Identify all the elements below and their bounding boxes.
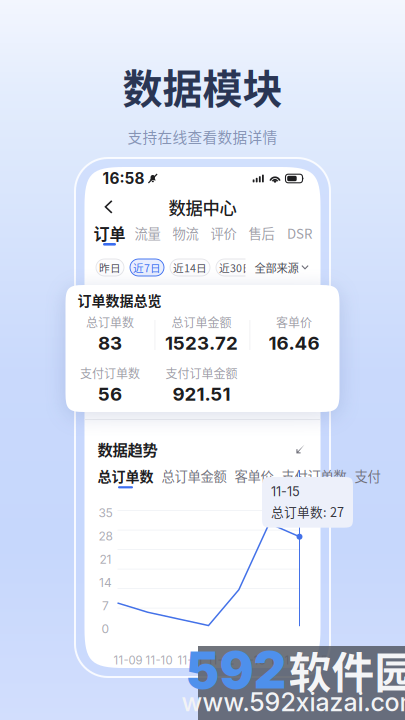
button[interactable]: 全屏 <box>292 441 308 457</box>
staticText: 数据趋势 <box>97 438 157 460</box>
staticText: 客单价 <box>276 313 312 331</box>
staticText: 总订单数 <box>97 466 153 486</box>
button[interactable]: 昨日 <box>96 259 124 276</box>
staticText: 支付 <box>354 466 380 485</box>
staticText: 软件园 <box>288 639 405 701</box>
staticText: 16:58 <box>102 169 144 188</box>
staticText: 11-11 <box>177 653 202 667</box>
button[interactable]: 物流 <box>166 225 204 246</box>
button[interactable]: 近30日 <box>216 259 256 276</box>
staticText: 支付订单数 <box>80 364 140 382</box>
button[interactable]: 近14日 <box>170 259 210 276</box>
button[interactable]: 评价 <box>204 225 242 246</box>
button[interactable]: 近7日 <box>130 259 164 276</box>
button[interactable]: 支付订单数 <box>281 468 346 490</box>
staticText: 数据模块 <box>122 57 282 115</box>
staticText: 0 <box>101 622 109 636</box>
staticText: 11-15 <box>300 653 327 667</box>
button[interactable]: 订单 <box>90 225 128 246</box>
staticText: 数据中心 <box>168 194 236 220</box>
staticText: 1523.72 <box>165 332 238 354</box>
staticText: 近7 <box>270 260 287 275</box>
staticText: 14 <box>99 575 112 590</box>
staticText: 物流 <box>172 223 198 243</box>
staticText: 流量 <box>134 223 160 243</box>
staticText: 总订单金额 <box>171 313 231 331</box>
staticText: 售后 <box>248 223 274 243</box>
button[interactable]: 流量 <box>128 225 166 246</box>
staticText: 客单价 <box>234 466 273 485</box>
staticText: DSR <box>287 223 312 243</box>
staticText: 16.46 <box>268 332 319 354</box>
button[interactable]: 返回 <box>96 195 120 219</box>
staticText: 支付订单金额 <box>165 364 237 382</box>
staticText: 订单 <box>93 221 125 245</box>
staticText: 昨日 <box>99 260 121 275</box>
staticText: 总订单数: 27 <box>271 502 344 521</box>
staticText: 11-13 <box>238 653 265 667</box>
staticText: 11-12 <box>207 653 234 667</box>
staticText: 支持在线查看数据详情 <box>127 126 277 147</box>
button[interactable]: 支付 <box>354 468 380 490</box>
staticText: 21 <box>99 552 111 567</box>
staticText: 近7日 <box>133 260 161 275</box>
staticText: 11-09 <box>113 653 142 667</box>
button[interactable]: 近7 <box>262 259 296 276</box>
staticText: www.592xiazai.com <box>181 687 405 717</box>
staticText: 总订单数 <box>86 313 134 331</box>
button[interactable]: 全部来源 <box>245 255 308 280</box>
staticText: 近30日 <box>219 260 253 275</box>
staticText: 11-15 <box>271 484 300 499</box>
staticText: 总订单金额 <box>161 466 226 485</box>
button[interactable]: 客单价 <box>234 468 273 490</box>
staticText: 7 <box>102 598 109 613</box>
staticText: 921.51 <box>172 383 230 405</box>
button[interactable]: 总订单数 <box>97 468 153 490</box>
button[interactable]: DSR <box>280 225 318 246</box>
staticText: 35 <box>98 506 112 520</box>
staticText: 28 <box>98 529 112 543</box>
button[interactable]: 售后 <box>242 225 280 246</box>
staticText: 全部来源 <box>254 259 298 276</box>
staticText: 评价 <box>210 223 236 243</box>
staticText: 支付订单数 <box>281 466 346 485</box>
staticText: 订单数据总览 <box>77 290 161 310</box>
staticText: 近14日 <box>173 260 207 275</box>
staticText: 11-14 <box>269 653 296 667</box>
staticText: 83 <box>98 332 122 354</box>
button[interactable]: 总订单金额 <box>161 468 226 490</box>
staticText: 592 <box>185 639 286 701</box>
staticText: 11-10 <box>145 653 172 667</box>
staticText: 56 <box>98 383 122 405</box>
